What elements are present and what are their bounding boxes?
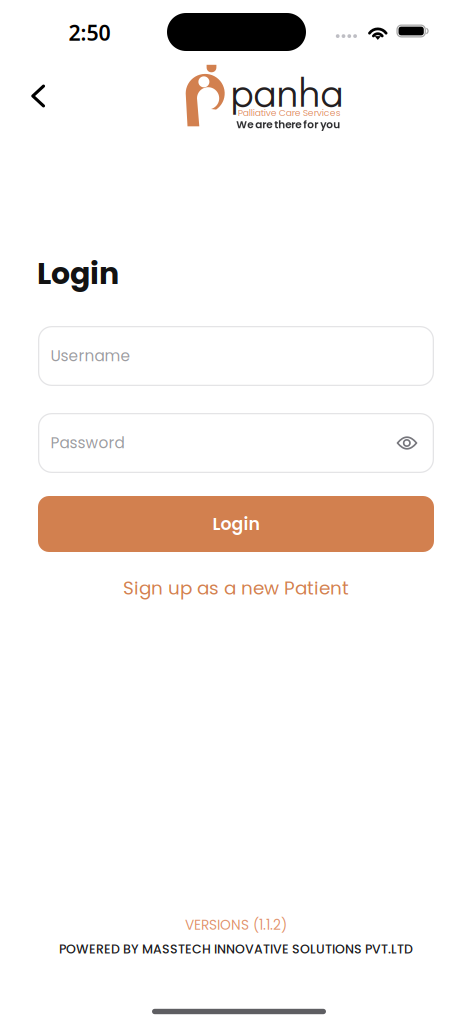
staticText: Login (37, 252, 119, 294)
staticText: Palliative Care Services (238, 106, 341, 119)
button[interactable]: Login (38, 496, 434, 552)
staticText: We are there for you (236, 117, 340, 132)
staticText: Sign up as a new Patient (123, 575, 349, 601)
staticText: Username (50, 345, 130, 367)
staticText: VERSIONS (1.1.2) (185, 915, 287, 935)
staticText: POWERED BY MASSTECH INNOVATIVE SOLUTIONS… (59, 940, 413, 958)
button[interactable]: Sign up as a new Patient (38, 573, 434, 603)
button[interactable]: Show password (392, 428, 422, 458)
staticText: panha (230, 64, 343, 118)
staticText: 2:50 (68, 18, 110, 47)
button[interactable]: Back (15, 73, 61, 119)
staticText: Login (212, 512, 259, 536)
staticText: Password (50, 432, 124, 454)
